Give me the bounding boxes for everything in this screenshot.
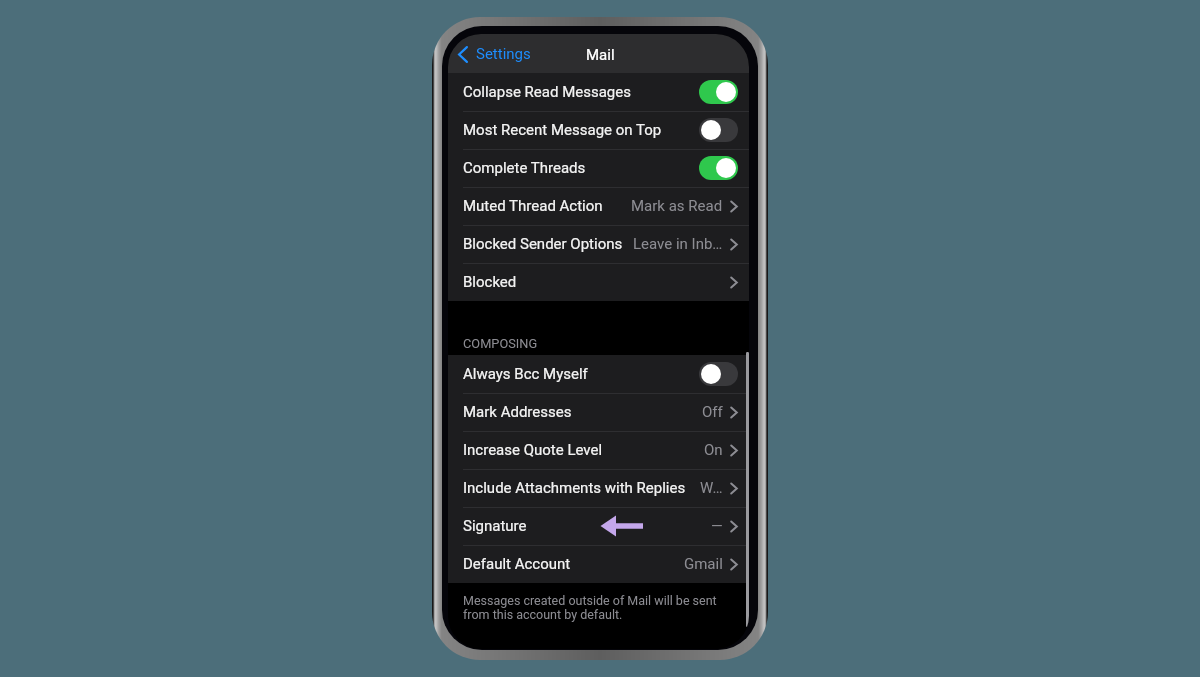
staticText: Blocked [463, 273, 517, 291]
staticText: Messages created outside of Mail will be… [463, 593, 717, 623]
button[interactable]: Most Recent Message on Top [699, 118, 738, 142]
button[interactable]: Signature [448, 507, 749, 545]
staticText: W… [700, 479, 723, 497]
staticText: Signature [463, 517, 527, 535]
button[interactable]: Always Bcc Myself [699, 362, 738, 386]
staticText: Mark Addresses [463, 403, 572, 421]
staticText: On [704, 441, 723, 459]
staticText: Always Bcc Myself [463, 365, 588, 383]
button[interactable]: Mark Addresses [448, 393, 749, 431]
button[interactable]: Complete Threads [448, 149, 749, 187]
button[interactable]: Complete Threads [699, 156, 738, 180]
button[interactable]: Collapse Read Messages [448, 73, 749, 111]
staticText: Off [702, 403, 723, 421]
button[interactable]: Always Bcc Myself [448, 355, 749, 393]
staticText: Muted Thread Action [463, 197, 603, 215]
button[interactable]: Blocked [448, 263, 749, 301]
staticText: — [711, 517, 723, 535]
button[interactable]: Muted Thread Action [448, 187, 749, 225]
staticText: Leave in Inb… [633, 235, 723, 253]
staticText: Collapse Read Messages [463, 83, 631, 101]
button[interactable]: Settings [448, 40, 541, 68]
staticText: Default Account [463, 555, 571, 573]
button[interactable]: Most Recent Message on Top [448, 111, 749, 149]
staticText: Complete Threads [463, 159, 586, 177]
staticText: Settings [476, 45, 531, 63]
button[interactable]: Include Attachments with Replies [448, 469, 749, 507]
staticText: Most Recent Message on Top [463, 121, 662, 139]
button[interactable]: Blocked Sender Options [448, 225, 749, 263]
staticText: Blocked Sender Options [463, 235, 623, 253]
staticText: COMPOSING [463, 336, 538, 351]
button[interactable]: Increase Quote Level [448, 431, 749, 469]
staticText: Mail [586, 46, 615, 64]
button[interactable]: Collapse Read Messages [699, 80, 738, 104]
button[interactable]: Default Account [448, 545, 749, 583]
staticText: Include Attachments with Replies [463, 479, 686, 497]
staticText: Mark as Read [631, 197, 723, 215]
staticText: Gmail [684, 555, 723, 573]
staticText: Increase Quote Level [463, 441, 603, 459]
